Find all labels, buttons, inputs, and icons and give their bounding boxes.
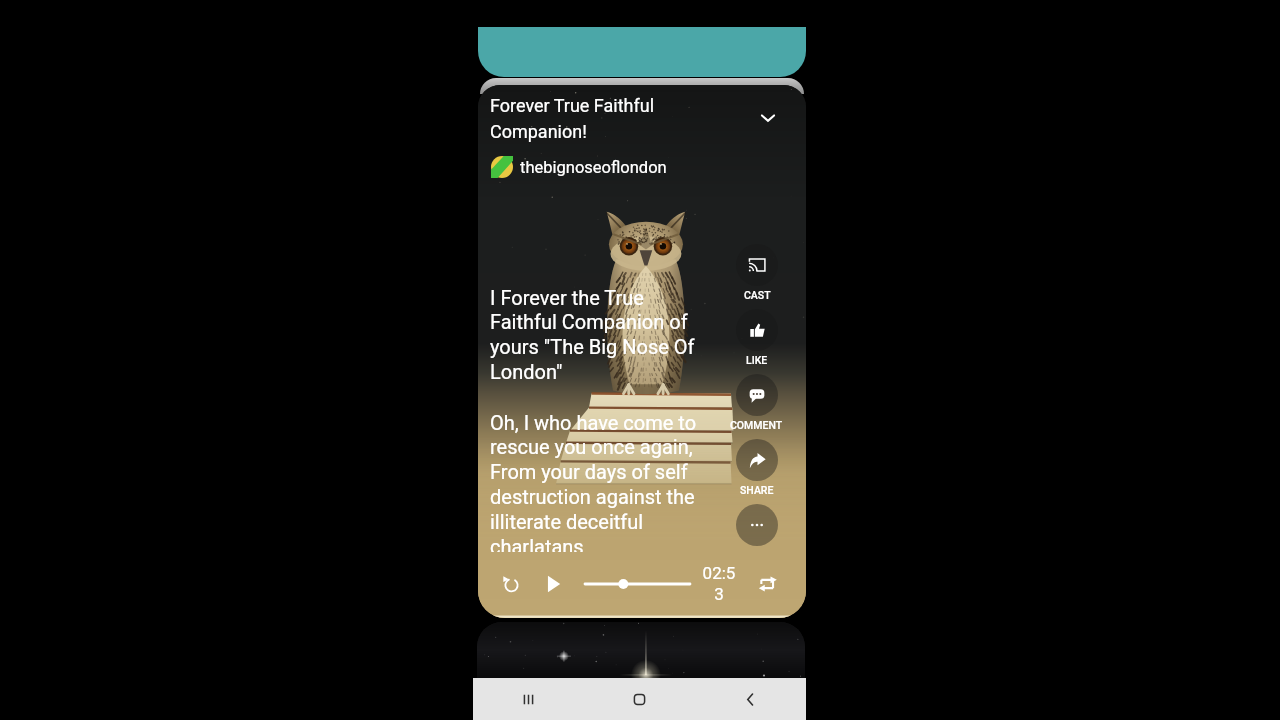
button[interactable]: COMMENT bbox=[736, 374, 778, 416]
staticText: thebignoseoflondon bbox=[520, 158, 667, 177]
staticText: CAST bbox=[744, 289, 771, 301]
button[interactable]: SHARE bbox=[736, 439, 778, 481]
staticText: SHARE bbox=[740, 484, 774, 496]
staticText: COMMENT bbox=[730, 419, 783, 431]
button[interactable]: Replay bbox=[493, 566, 529, 602]
button[interactable]: LIKE bbox=[736, 309, 778, 351]
staticText: I Forever the True Faithful Companion of… bbox=[490, 286, 712, 384]
button[interactable]: Home bbox=[584, 678, 695, 720]
button[interactable]: CAST bbox=[736, 244, 778, 286]
staticText: 02:53 bbox=[702, 563, 736, 605]
button[interactable]: Back bbox=[695, 678, 806, 720]
button[interactable]: Collapse bbox=[751, 101, 785, 135]
button[interactable]: Play bbox=[535, 566, 571, 602]
button[interactable]: thebignoseoflondon bbox=[491, 156, 667, 178]
staticText: LIKE bbox=[746, 354, 768, 366]
staticText: Oh, I who have come to rescue you once a… bbox=[490, 411, 712, 552]
button[interactable]: More options bbox=[736, 504, 778, 546]
button[interactable]: Forever True Faithful Companion! bbox=[490, 95, 682, 143]
button[interactable]: Recent apps bbox=[473, 678, 584, 720]
button[interactable]: Repeat bbox=[750, 566, 786, 602]
button[interactable]: Seek bbox=[581, 570, 694, 598]
